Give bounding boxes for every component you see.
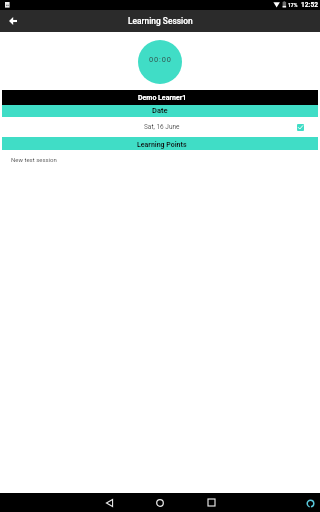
button[interactable]: Learning Points — [2, 137, 318, 150]
button[interactable]: Home — [143, 493, 177, 512]
button[interactable]: Back — [92, 493, 126, 512]
staticText: 12:52 — [301, 1, 318, 9]
button[interactable]: Back — [5, 13, 21, 29]
staticText: Date — [152, 106, 168, 115]
staticText: 17% — [288, 2, 298, 8]
button[interactable]: New test session — [0, 150, 320, 169]
staticText: Sat, 16 June — [144, 123, 180, 131]
button[interactable]: Recent apps — [194, 493, 228, 512]
staticText: 00:00 — [149, 55, 172, 64]
button[interactable]: Assistant — [303, 496, 317, 510]
button[interactable]: Sat, 16 June — [0, 117, 320, 137]
button[interactable]: Demo Learner1 — [2, 90, 318, 105]
staticText: Demo Learner1 — [138, 94, 187, 102]
staticText: New test session — [11, 156, 57, 163]
button[interactable]: Date selected — [297, 124, 304, 131]
staticText: Learning Points — [137, 141, 187, 149]
button[interactable]: Date — [2, 105, 318, 117]
staticText: Learning Session — [128, 16, 193, 26]
button[interactable]: 00:00 — [138, 40, 182, 84]
